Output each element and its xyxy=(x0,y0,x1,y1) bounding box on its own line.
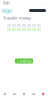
staticText: 9:41 xyxy=(3,0,10,6)
staticText: .... xyxy=(41,0,45,6)
staticText: Continue xyxy=(16,58,31,64)
button[interactable]: Tab xyxy=(29,89,38,98)
button[interactable]: Tab xyxy=(0,89,10,98)
button[interactable]: Tab xyxy=(19,89,29,98)
staticText: logo xyxy=(2,7,12,14)
button[interactable]: Home xyxy=(2,7,12,14)
button[interactable]: Continue xyxy=(15,58,33,63)
button[interactable]: Tab xyxy=(38,89,48,98)
staticText: Transfer money xyxy=(3,15,31,21)
button[interactable]: Menu xyxy=(29,9,46,12)
button[interactable]: Tab xyxy=(10,89,19,98)
